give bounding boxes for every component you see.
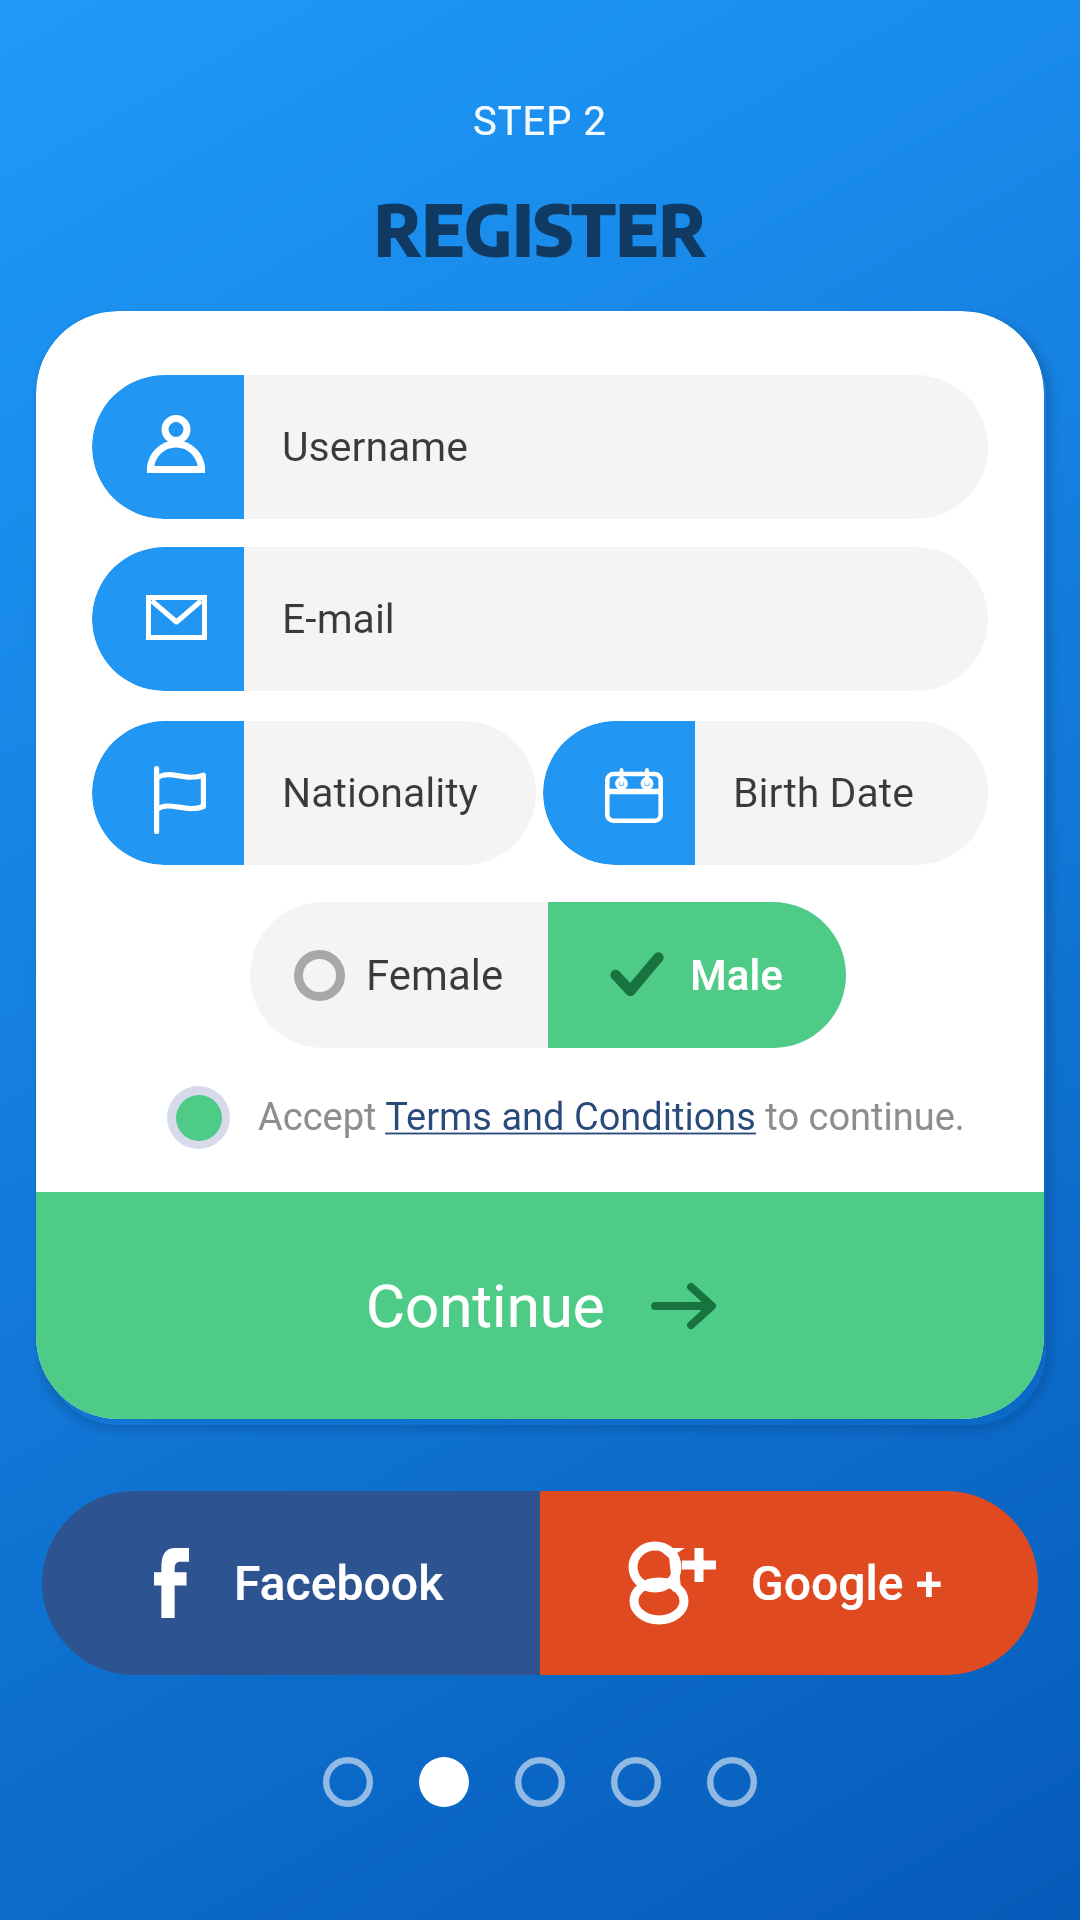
button[interactable]: Page 3 <box>515 1757 565 1807</box>
button[interactable]: Birth Date <box>543 721 988 865</box>
staticText: REGISTER <box>374 183 707 273</box>
staticText: Continue <box>366 1271 605 1341</box>
staticText: E-mail <box>282 595 395 643</box>
button[interactable]: Female <box>250 902 548 1048</box>
button[interactable]: E-mail <box>92 547 988 691</box>
staticText: Accept Terms and Conditions to continue. <box>258 1095 965 1140</box>
staticText: Birth Date <box>733 769 914 817</box>
button[interactable]: Male <box>548 902 846 1048</box>
staticText: Male <box>690 951 783 1000</box>
button[interactable]: Google + <box>540 1491 1038 1675</box>
button[interactable]: Accept terms toggle <box>167 1086 230 1149</box>
button[interactable]: Nationality <box>92 721 536 865</box>
button[interactable]: Username <box>92 375 988 519</box>
button[interactable]: Page 1 <box>323 1757 373 1807</box>
staticText: Facebook <box>234 1555 444 1611</box>
staticText: STEP 2 <box>473 98 607 145</box>
button[interactable]: Facebook <box>42 1491 540 1675</box>
button[interactable]: Continue <box>36 1192 1044 1419</box>
staticText: Google + <box>751 1555 943 1611</box>
button[interactable]: Page 2 <box>419 1757 469 1807</box>
staticText: Female <box>366 951 504 1000</box>
staticText: Username <box>282 423 469 471</box>
button[interactable]: Page 5 <box>707 1757 757 1807</box>
button[interactable]: Page 4 <box>611 1757 661 1807</box>
staticText: Nationality <box>282 769 479 817</box>
